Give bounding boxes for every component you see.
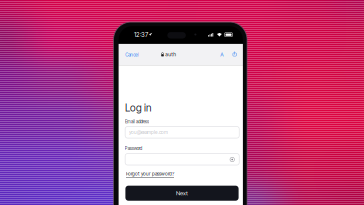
staticText: Next	[176, 190, 188, 197]
button[interactable]: Page settings	[218, 50, 226, 59]
staticText: Email address	[125, 119, 149, 124]
staticText: Log in	[125, 102, 151, 114]
staticText: A	[220, 51, 223, 58]
button[interactable]: Show password	[228, 155, 236, 163]
button[interactable]: Share	[231, 50, 239, 59]
button[interactable]: Forgot your password?	[126, 171, 174, 178]
staticText: Forgot your password?	[126, 171, 174, 177]
button[interactable]: Next	[125, 186, 239, 201]
staticText: you@example.com	[129, 129, 168, 135]
button[interactable]: Cancel	[122, 49, 142, 60]
staticText: 12:37	[134, 31, 148, 38]
staticText: auth	[165, 51, 176, 57]
staticText: Cancel	[125, 52, 139, 58]
staticText: Password	[125, 146, 142, 151]
